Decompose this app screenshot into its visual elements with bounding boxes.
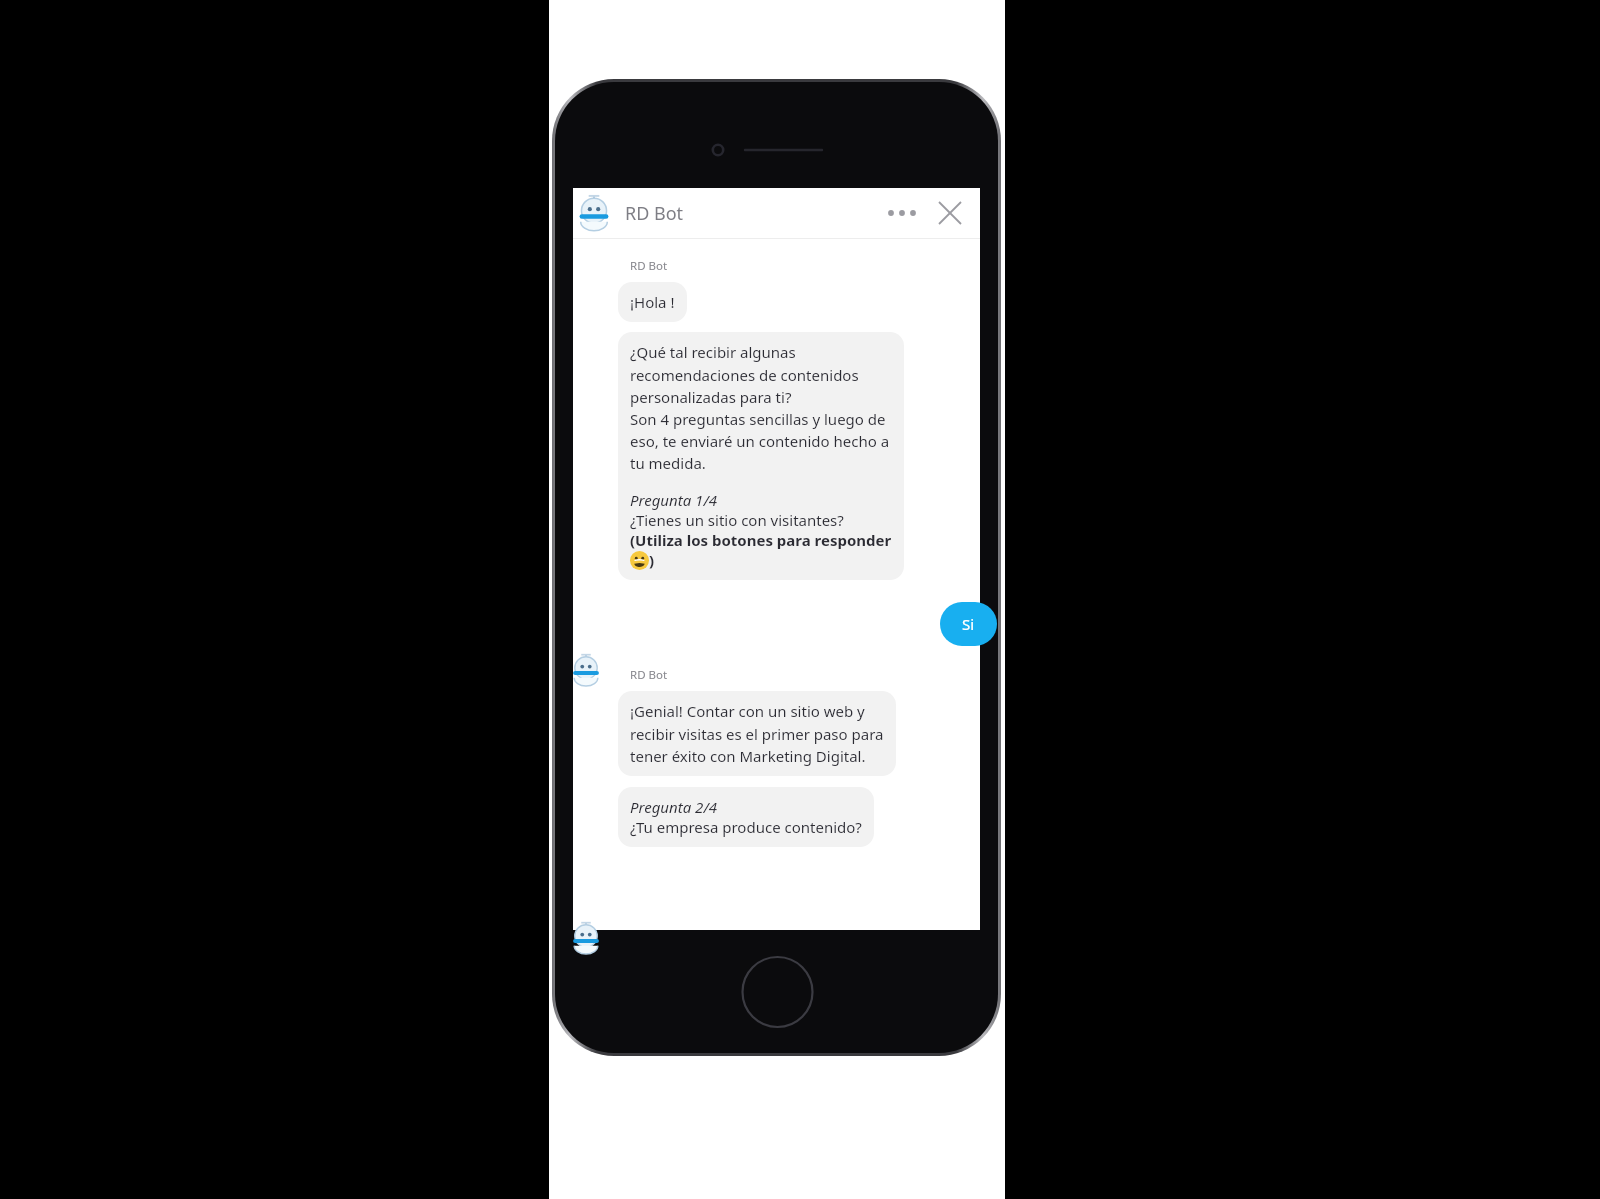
other: RD Bot avatar [569, 921, 603, 955]
other: RD Bot avatar [575, 194, 613, 232]
staticText: Pregunta 1/4 [630, 490, 717, 510]
staticText: RD Bot [630, 667, 668, 683]
button[interactable]: Close [928, 191, 972, 235]
other: RD Bot avatar [569, 653, 603, 687]
staticText: Si [962, 614, 975, 634]
button[interactable]: ¡Hola ! [618, 282, 687, 322]
button[interactable]: ¿Qué tal recibir algunas recomendaciones… [618, 332, 904, 580]
button[interactable]: More options [880, 191, 924, 235]
button[interactable]: Si [940, 602, 997, 646]
staticText: Pregunta 2/4 [630, 797, 717, 817]
button[interactable]: ¡Genial! Contar con un sitio web y recib… [618, 691, 896, 776]
staticText: RD Bot [630, 258, 668, 274]
staticText: ¿Tu empresa produce contenido? [630, 817, 862, 837]
staticText: (Utiliza los botones para responder [630, 530, 892, 550]
staticText: ) [649, 550, 655, 570]
staticText: ¡Hola ! [630, 292, 675, 312]
staticText: ¡Genial! Contar con un sitio web y recib… [630, 701, 884, 766]
staticText: RD Bot [625, 201, 684, 226]
staticText: ¿Qué tal recibir algunas recomendaciones… [630, 342, 890, 473]
staticText: ¿Tienes un sitio con visitantes? [630, 510, 844, 530]
button[interactable]: Pregunta 2/4 [618, 787, 874, 847]
